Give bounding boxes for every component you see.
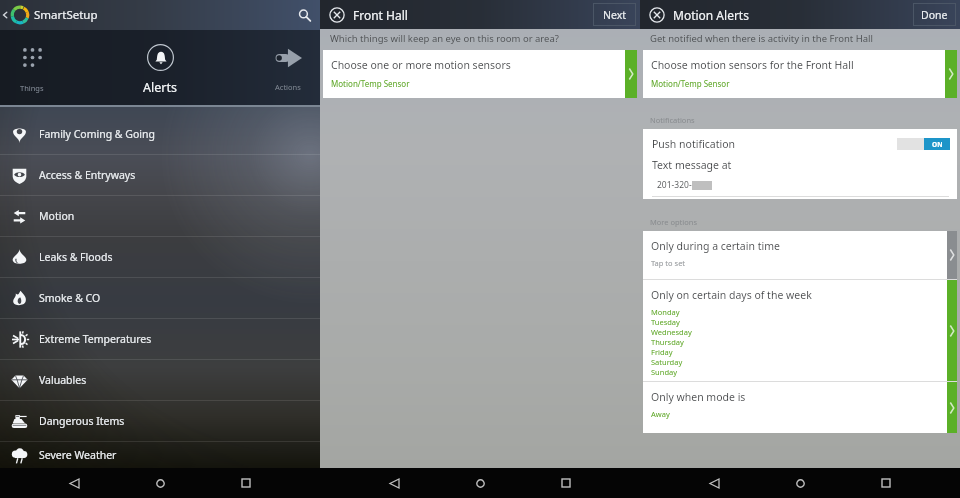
staticText: Actions [275, 82, 301, 92]
button[interactable]: Home [788, 471, 812, 495]
staticText: Next [603, 8, 627, 22]
staticText: Choose one or more motion sensors [331, 58, 511, 72]
button[interactable]: Back [62, 471, 86, 495]
staticText: Leaks & Floods [39, 250, 113, 264]
button[interactable]: Search [294, 5, 314, 25]
staticText: Front Hall [353, 7, 408, 23]
staticText: Only during a certain time [651, 239, 780, 253]
button[interactable]: Severe Weather [0, 442, 320, 468]
button[interactable]: Recents [234, 471, 258, 495]
button[interactable]: Access & Entryways [0, 155, 320, 195]
button[interactable]: Home [468, 471, 492, 495]
button[interactable]: Leaks & Floods [0, 237, 320, 277]
staticText: Done [921, 8, 948, 22]
button[interactable]: Motion [0, 196, 320, 236]
button[interactable]: Actions [256, 30, 320, 105]
button[interactable]: Back [0, 10, 10, 20]
staticText: Saturday [651, 357, 683, 367]
staticText: Only when mode is [651, 390, 746, 404]
button[interactable]: Valuables [0, 360, 320, 400]
staticText: Push notification [652, 137, 736, 151]
button[interactable]: Home [148, 471, 172, 495]
button[interactable]: Things [0, 30, 64, 105]
staticText: Valuables [39, 373, 87, 387]
button[interactable]: Push notification [652, 129, 950, 158]
staticText: Thursday [651, 337, 684, 347]
staticText: Tuesday [651, 317, 680, 327]
staticText: Sunday [651, 367, 678, 377]
staticText: Smoke & CO [39, 291, 101, 305]
staticText: Notifications [650, 115, 695, 125]
staticText: ON [932, 140, 943, 149]
staticText: Motion/Temp Sensor [331, 78, 410, 89]
staticText: Family Coming & Going [39, 127, 155, 141]
button[interactable]: Smoke & CO [0, 278, 320, 318]
button[interactable]: Close [648, 6, 665, 23]
button[interactable]: Back [702, 471, 726, 495]
button[interactable]: Recents [874, 471, 898, 495]
button[interactable]: Done [913, 3, 956, 26]
button[interactable]: Recents [554, 471, 578, 495]
button[interactable]: Only on certain days of the week [643, 280, 957, 381]
button[interactable]: Next [593, 3, 636, 26]
staticText: SmartSetup [34, 7, 98, 23]
staticText: Only on certain days of the week [651, 288, 812, 302]
button[interactable]: Extreme Temperatures [0, 319, 320, 359]
staticText: More options [650, 217, 698, 227]
staticText: Dangerous Items [39, 414, 125, 428]
button[interactable]: Choose one or more motion sensors [323, 50, 637, 98]
staticText: Text message at [652, 158, 732, 172]
staticText: 201-320- [657, 179, 692, 191]
staticText: Things [20, 83, 44, 93]
staticText: Motion Alerts [673, 7, 749, 23]
staticText: Choose motion sensors for the Front Hall [651, 58, 854, 72]
staticText: Friday [651, 347, 673, 357]
button[interactable]: Dangerous Items [0, 401, 320, 441]
staticText: Away [651, 409, 670, 419]
staticText: Severe Weather [39, 448, 117, 462]
button[interactable]: Family Coming & Going [0, 114, 320, 154]
button[interactable]: Choose motion sensors for the Front Hall [643, 50, 957, 98]
button[interactable]: Close [328, 6, 345, 23]
button[interactable]: Only during a certain time [643, 231, 957, 279]
button[interactable]: Only when mode is [643, 382, 957, 433]
staticText: Motion [39, 209, 75, 223]
staticText: Which things will keep an eye on this ro… [330, 32, 559, 45]
staticText: Alerts [143, 79, 177, 96]
staticText: Extreme Temperatures [39, 332, 152, 346]
staticText: Monday [651, 307, 680, 317]
button[interactable]: Alerts [0, 30, 320, 105]
staticText: Wednesday [651, 327, 692, 337]
staticText: Get notified when there is activity in t… [650, 32, 873, 45]
button[interactable]: Back [382, 471, 406, 495]
staticText: Access & Entryways [39, 168, 136, 182]
staticText: Tap to set [651, 258, 686, 268]
staticText: Motion/Temp Sensor [651, 78, 730, 89]
